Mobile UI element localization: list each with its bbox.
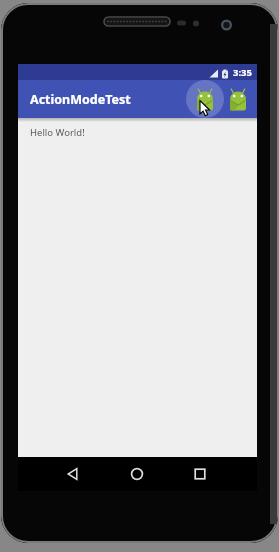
- button[interactable]: [117, 457, 157, 491]
- button[interactable]: [220, 80, 256, 118]
- button[interactable]: [187, 80, 223, 118]
- button[interactable]: [180, 457, 220, 491]
- staticText: Hello World!: [30, 126, 85, 139]
- staticText: ActionModeTest: [30, 91, 131, 108]
- staticText: 3:35: [233, 66, 252, 79]
- button[interactable]: [53, 457, 93, 491]
